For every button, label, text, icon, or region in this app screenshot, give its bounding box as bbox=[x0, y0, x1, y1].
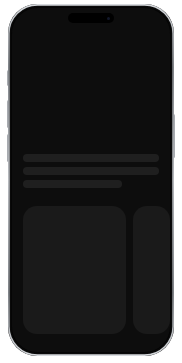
other: Silent switch bbox=[7, 70, 10, 86]
other: Volume down bbox=[7, 134, 10, 162]
other: Volume up bbox=[7, 100, 10, 128]
other: Power bbox=[172, 114, 175, 158]
